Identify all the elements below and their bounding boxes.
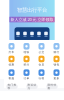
button[interactable]: Quick action — [21, 27, 28, 41]
staticText: 新人立减 20 元 立即领取 — [10, 17, 53, 22]
button[interactable]: Quick action — [35, 27, 42, 41]
button[interactable]: Quick action — [28, 27, 35, 41]
staticText: 客服 — [8, 77, 14, 80]
button[interactable]: 钱包 — [49, 56, 64, 66]
staticText: 打车 — [8, 50, 14, 54]
button[interactable]: 更多 — [49, 69, 64, 80]
staticText: 钱包 — [53, 63, 59, 66]
button[interactable]: 打车 — [4, 43, 19, 54]
button[interactable]: 公交 — [34, 43, 49, 54]
button[interactable]: Quick action — [42, 27, 49, 41]
staticText: 积分 — [23, 63, 29, 66]
staticText: 更多 — [53, 77, 59, 80]
staticText: 公交 — [38, 50, 44, 54]
staticText: 智慧出行平台 — [17, 7, 47, 13]
staticText: 骑行 — [53, 50, 59, 54]
button[interactable]: Quick action — [14, 27, 21, 41]
staticText: 优惠 — [8, 63, 14, 66]
button[interactable]: 优惠 — [4, 56, 19, 66]
button[interactable]: 地铁 — [19, 43, 34, 54]
button[interactable]: 新人立减 20 元 立即领取 — [9, 17, 54, 22]
staticText: 限时特惠 — [47, 83, 56, 90]
button[interactable]: 热门推荐 — [2, 84, 22, 89]
staticText: 行程 — [38, 77, 44, 80]
button[interactable]: 附近站点 — [22, 84, 42, 89]
button[interactable]: 客服 — [4, 69, 19, 80]
staticText: 热门推荐 — [7, 83, 16, 90]
staticText: 订单 — [23, 77, 29, 80]
button[interactable]: 积分 — [19, 56, 34, 66]
staticText: 会员 — [38, 63, 44, 66]
button[interactable]: 订单 — [19, 69, 34, 80]
button[interactable]: 行程 — [34, 69, 49, 80]
button[interactable]: 骑行 — [49, 43, 64, 54]
staticText: 附近站点 — [27, 83, 36, 90]
staticText: 地铁 — [23, 50, 29, 54]
button[interactable]: 会员 — [34, 56, 49, 66]
button[interactable]: 限时特惠 — [42, 84, 62, 89]
